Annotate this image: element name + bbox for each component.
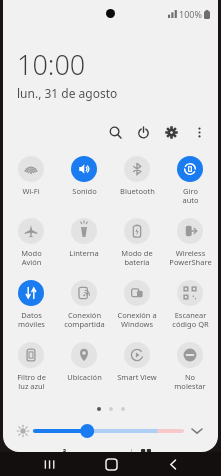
button[interactable]: Datos móviles: [6, 277, 56, 339]
staticText: Wireless PowerShare: [169, 248, 212, 267]
button[interactable]: Settings: [160, 121, 182, 143]
button[interactable]: Brightness slider: [35, 421, 182, 441]
button[interactable]: Conexión a Windows: [112, 277, 162, 339]
staticText: Linterna: [69, 248, 99, 258]
button[interactable]: Brightness: [15, 423, 31, 439]
button[interactable]: Back: [158, 452, 188, 476]
button[interactable]: Ubicación: [59, 339, 109, 401]
staticText: Dispositivos: [154, 449, 205, 452]
button[interactable]: Giro auto: [165, 153, 215, 215]
button[interactable]: Wi-Fi: [6, 153, 56, 215]
button[interactable]: Modo de batería: [112, 215, 162, 277]
button[interactable]: No molestar: [165, 339, 215, 401]
button[interactable]: Sonido: [59, 153, 109, 215]
staticText: Smart View: [117, 372, 157, 382]
button[interactable]: Expand brightness: [188, 422, 206, 440]
button[interactable]: Search: [104, 121, 126, 143]
button[interactable]: Modo Avión: [6, 215, 56, 277]
button[interactable]: More options: [188, 121, 210, 143]
button[interactable]: Wireless PowerShare: [165, 215, 215, 277]
staticText: Bluetooth: [120, 186, 155, 196]
button[interactable]: Linterna: [59, 215, 109, 277]
staticText: Conexión compartida: [64, 310, 105, 329]
button[interactable]: Power: [132, 121, 154, 143]
button[interactable]: Filtro de luz azul: [6, 339, 56, 401]
staticText: lun., 31 de agosto: [17, 85, 118, 101]
staticText: Wi-Fi: [22, 186, 40, 196]
staticText: Modo de batería: [121, 248, 153, 267]
button[interactable]: Dispositivos: [138, 449, 208, 452]
staticText: Modo Avión: [21, 248, 42, 267]
button[interactable]: Escanear código QR: [165, 277, 215, 339]
staticText: Filtro de luz azul: [17, 372, 46, 391]
button[interactable]: Smart View: [112, 339, 162, 401]
button[interactable]: Bluetooth: [112, 153, 162, 215]
staticText: 10:00: [17, 46, 86, 83]
staticText: 100%: [179, 8, 202, 20]
staticText: No molestar: [174, 372, 206, 391]
staticText: Escanear código QR: [172, 310, 209, 329]
button[interactable]: Multimedia: [56, 449, 125, 452]
staticText: Giro auto: [182, 186, 199, 205]
button[interactable]: Home: [96, 452, 126, 476]
staticText: Datos móviles: [18, 310, 45, 329]
staticText: Ubicación: [67, 372, 102, 382]
staticText: Conexión a Windows: [117, 310, 157, 329]
staticText: Sonido: [72, 186, 97, 196]
button[interactable]: Conexión compartida: [59, 277, 109, 339]
button[interactable]: Recents: [33, 452, 63, 476]
